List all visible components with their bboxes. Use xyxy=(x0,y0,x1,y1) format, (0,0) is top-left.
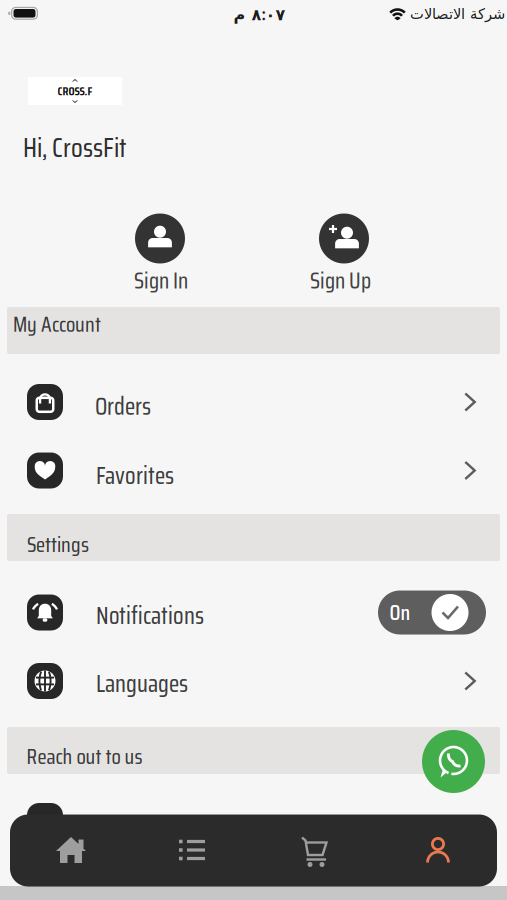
staticText: Languages xyxy=(96,665,188,702)
staticText: Sign Up xyxy=(310,263,371,298)
button[interactable]: Orders xyxy=(0,369,507,435)
button[interactable]: Categories xyxy=(143,817,243,883)
staticText: My Account xyxy=(13,308,101,341)
staticText: Orders xyxy=(95,388,151,425)
staticText: Reach out to us xyxy=(26,740,142,773)
button[interactable]: Profile xyxy=(386,817,486,883)
button[interactable]: Cart xyxy=(264,817,364,883)
button[interactable]: Languages xyxy=(0,648,507,714)
staticText: On xyxy=(389,596,410,629)
button[interactable]: Home xyxy=(21,817,121,883)
button[interactable]: WhatsApp xyxy=(421,729,485,793)
staticText: Hi, CrossFit xyxy=(23,127,126,169)
button[interactable]: Sign Up xyxy=(310,210,378,295)
staticText: Sign In xyxy=(134,263,188,298)
staticText: Favorites xyxy=(96,457,174,495)
staticText: شركة الاتصالات xyxy=(409,6,504,22)
staticText: ٨:٠٧ م xyxy=(233,3,285,25)
staticText: Settings xyxy=(27,528,89,561)
button[interactable]: Notifications On xyxy=(378,590,486,634)
button[interactable]: Favorites xyxy=(0,437,507,503)
button[interactable]: Sign In xyxy=(126,210,194,295)
staticText: CROSS.F xyxy=(57,82,92,100)
staticText: Notifications xyxy=(96,597,204,634)
